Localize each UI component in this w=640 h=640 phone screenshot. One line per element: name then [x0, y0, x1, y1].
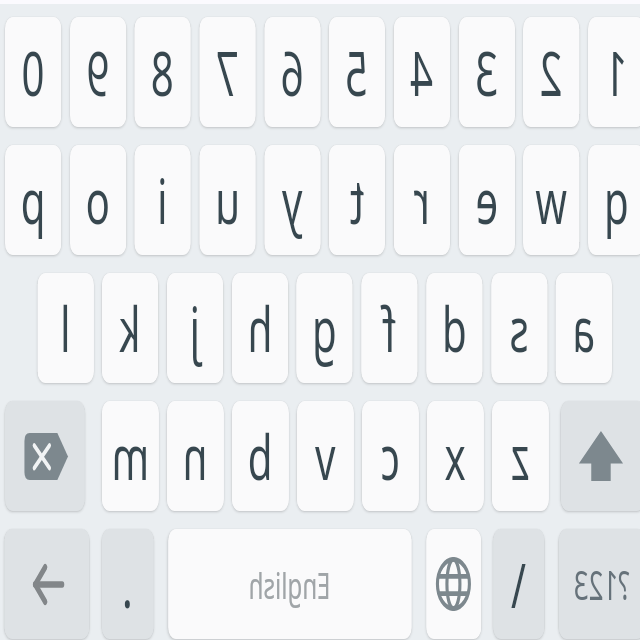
button[interactable]: j: [167, 273, 223, 383]
button[interactable]: k: [102, 273, 158, 383]
staticText: 9: [86, 30, 110, 114]
button[interactable]: b: [232, 401, 289, 511]
button[interactable]: 0: [5, 17, 61, 127]
staticText: x: [444, 414, 466, 498]
staticText: h: [247, 286, 273, 370]
button[interactable]: 2: [523, 17, 580, 127]
button[interactable]: z: [492, 401, 549, 511]
button[interactable]: l: [37, 273, 94, 383]
staticText: b: [247, 414, 273, 498]
staticText: 8: [150, 30, 174, 114]
staticText: 4: [410, 30, 433, 114]
button[interactable]: 7: [199, 17, 256, 127]
staticText: 0: [21, 30, 45, 114]
staticText: l: [60, 286, 71, 370]
staticText: 2: [539, 30, 563, 114]
button[interactable]: 8: [134, 17, 191, 127]
staticText: p: [20, 158, 46, 242]
staticText: r: [413, 158, 430, 242]
button[interactable]: d: [426, 273, 483, 383]
button[interactable]: Shift: [561, 401, 640, 511]
staticText: 5: [345, 30, 368, 114]
button[interactable]: g: [296, 273, 353, 383]
button[interactable]: Enter: [4, 529, 89, 639]
button[interactable]: p: [5, 145, 61, 255]
button[interactable]: t: [329, 145, 385, 255]
staticText: i: [157, 158, 167, 242]
button[interactable]: s: [491, 273, 548, 383]
staticText: s: [509, 286, 529, 370]
button[interactable]: 3: [459, 17, 515, 127]
button[interactable]: f: [361, 273, 418, 383]
button[interactable]: 6: [264, 17, 321, 127]
staticText: \: [511, 542, 526, 626]
button[interactable]: 9: [70, 17, 126, 127]
button[interactable]: o: [70, 145, 126, 255]
button[interactable]: y: [264, 145, 321, 255]
button[interactable]: r: [394, 145, 450, 255]
button[interactable]: Change language: [426, 529, 481, 639]
button[interactable]: q: [588, 145, 640, 255]
staticText: f: [382, 286, 396, 370]
button[interactable]: Period: [102, 529, 154, 639]
staticText: q: [604, 158, 629, 242]
button[interactable]: n: [167, 401, 224, 511]
button[interactable]: Backslash: [493, 529, 544, 639]
button[interactable]: i: [134, 145, 191, 255]
staticText: .: [122, 542, 133, 626]
button[interactable]: m: [102, 401, 159, 511]
staticText: 6: [280, 30, 304, 114]
button[interactable]: Symbols: [559, 529, 640, 639]
staticText: j: [189, 286, 200, 370]
button[interactable]: v: [297, 401, 354, 511]
staticText: y: [282, 158, 303, 242]
button[interactable]: a: [555, 273, 612, 383]
button[interactable]: w: [523, 145, 580, 255]
staticText: g: [312, 286, 337, 370]
staticText: z: [511, 414, 530, 498]
staticText: t: [349, 158, 364, 242]
button[interactable]: e: [459, 145, 515, 255]
staticText: English: [249, 559, 331, 609]
staticText: a: [572, 286, 595, 370]
button[interactable]: u: [199, 145, 256, 255]
button[interactable]: x: [427, 401, 484, 511]
staticText: v: [315, 414, 336, 498]
staticText: o: [85, 158, 110, 242]
staticText: c: [381, 414, 400, 498]
staticText: ?123: [574, 557, 630, 611]
staticText: 1: [604, 30, 628, 114]
staticText: e: [475, 158, 498, 242]
button[interactable]: c: [362, 401, 419, 511]
button[interactable]: 5: [329, 17, 385, 127]
button[interactable]: Delete: [5, 401, 85, 511]
staticText: 3: [475, 30, 498, 114]
staticText: n: [182, 414, 208, 498]
staticText: m: [111, 414, 149, 498]
staticText: u: [215, 158, 240, 242]
staticText: w: [535, 158, 567, 242]
button[interactable]: 1: [588, 17, 640, 127]
staticText: k: [119, 286, 141, 370]
staticText: d: [442, 286, 467, 370]
button[interactable]: 4: [394, 17, 450, 127]
button[interactable]: Space, English: [168, 529, 412, 639]
staticText: 7: [215, 30, 239, 114]
button[interactable]: h: [232, 273, 288, 383]
